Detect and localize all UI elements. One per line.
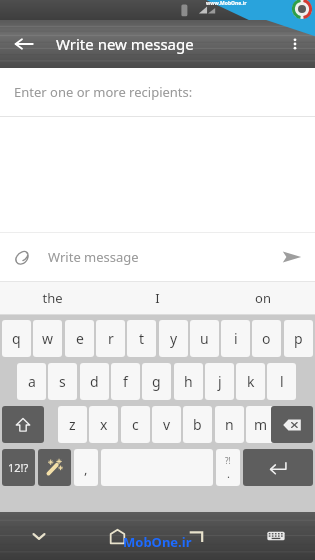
button[interactable]: I	[105, 282, 210, 314]
button[interactable]: Enter	[243, 449, 313, 486]
button[interactable]: w	[33, 320, 62, 357]
staticText: g	[152, 372, 161, 391]
button[interactable]: f	[111, 363, 140, 400]
staticText: www.MobOne.ir	[206, 0, 247, 7]
staticText: y	[170, 329, 178, 348]
staticText: m	[254, 415, 268, 434]
button[interactable]: Home	[78, 512, 157, 560]
button[interactable]: Enter one or more recipients:	[0, 68, 315, 116]
button[interactable]: d	[80, 363, 109, 400]
button[interactable]: the	[0, 282, 105, 314]
staticText: i	[234, 329, 238, 348]
button[interactable]: s	[48, 363, 77, 400]
button[interactable]: c	[121, 406, 150, 443]
button[interactable]: ,	[74, 449, 98, 486]
staticText: Write new message	[56, 34, 194, 54]
staticText: x	[100, 415, 108, 434]
staticText: h	[184, 372, 193, 391]
button[interactable]: Shift	[2, 406, 44, 443]
button[interactable]: y	[159, 320, 188, 357]
staticText: k	[247, 372, 255, 391]
staticText: e	[76, 329, 84, 348]
button[interactable]: Backspace	[271, 406, 313, 443]
button[interactable]: t	[127, 320, 156, 357]
staticText: p	[294, 329, 303, 348]
staticText: v	[163, 415, 171, 434]
staticText: 12!?	[8, 460, 29, 475]
staticText: j	[218, 372, 222, 391]
staticText: c	[132, 415, 139, 434]
button[interactable]: l	[267, 363, 296, 400]
button[interactable]: 12!?	[2, 449, 35, 486]
button[interactable]: Back	[0, 20, 48, 68]
staticText: f	[123, 372, 128, 391]
button[interactable]: j	[205, 363, 234, 400]
staticText: .	[227, 466, 230, 481]
button[interactable]: Send	[269, 234, 315, 280]
button[interactable]: More options	[275, 24, 315, 64]
button[interactable]: m	[246, 406, 275, 443]
staticText: z	[69, 415, 76, 434]
staticText: b	[193, 415, 202, 434]
staticText: r	[108, 329, 114, 348]
button[interactable]: i	[221, 320, 250, 357]
staticText: the	[42, 289, 63, 307]
staticText: on	[255, 289, 271, 307]
button[interactable]: r	[96, 320, 125, 357]
button[interactable]: Attach	[0, 235, 44, 279]
staticText: MobOne.ir	[123, 533, 192, 551]
staticText: q	[12, 329, 21, 348]
staticText: n	[225, 415, 234, 434]
staticText: a	[28, 372, 36, 391]
button[interactable]: o	[252, 320, 281, 357]
button[interactable]: Recent apps	[157, 512, 236, 560]
staticText: ,	[84, 460, 88, 478]
staticText: d	[90, 372, 99, 391]
staticText: I	[155, 289, 160, 307]
button[interactable]: Text tools	[38, 449, 71, 486]
button[interactable]: q	[2, 320, 31, 357]
button[interactable]: z	[58, 406, 87, 443]
staticText: Enter one or more recipients:	[14, 83, 193, 101]
button[interactable]: h	[174, 363, 203, 400]
staticText: o	[262, 329, 271, 348]
staticText: u	[200, 329, 209, 348]
staticText: s	[59, 372, 66, 391]
button[interactable]: e	[65, 320, 94, 357]
staticText: w	[42, 329, 54, 348]
staticText: Write message	[48, 248, 139, 266]
staticText: t	[139, 329, 145, 348]
staticText: l	[280, 372, 284, 391]
button[interactable]: u	[190, 320, 219, 357]
button[interactable]: v	[152, 406, 181, 443]
button[interactable]: x	[89, 406, 118, 443]
button[interactable]: Switch keyboard	[236, 512, 315, 560]
button[interactable]: n	[215, 406, 244, 443]
button[interactable]: p	[284, 320, 313, 357]
button[interactable]: Write message	[44, 233, 269, 281]
button[interactable]: k	[236, 363, 265, 400]
button[interactable]: b	[183, 406, 212, 443]
button[interactable]: Hide keyboard	[0, 512, 78, 560]
button[interactable]: on	[210, 282, 315, 314]
button[interactable]: g	[142, 363, 171, 400]
button[interactable]: Period	[216, 449, 240, 486]
button[interactable]: a	[17, 363, 46, 400]
staticText: ?!	[225, 455, 231, 466]
